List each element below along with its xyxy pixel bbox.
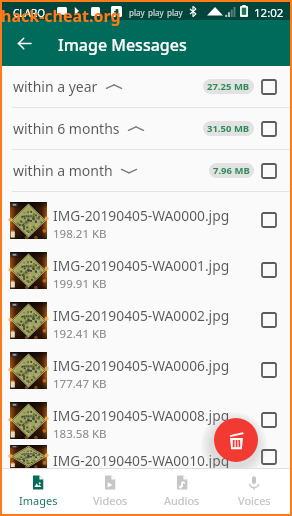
- button[interactable]: Select: [258, 118, 280, 140]
- staticText: 183.58 KB: [53, 426, 107, 442]
- staticText: Image Messages: [58, 34, 187, 56]
- staticText: IMG-20190405-WA0002.jpg: [53, 306, 230, 325]
- staticText: IMG-20190405-WA0006.jpg: [53, 356, 230, 375]
- staticText: Images: [19, 493, 58, 508]
- button[interactable]: Select: [258, 76, 280, 98]
- staticText: 31.50 MB: [207, 122, 250, 135]
- button[interactable]: IMG-20190405-WA0000.jpg: [2, 195, 290, 245]
- button[interactable]: Select: [258, 359, 280, 381]
- staticText: Audios: [164, 493, 200, 508]
- staticText: hack-cheat.org: [1, 5, 121, 27]
- staticText: Videos: [93, 493, 128, 508]
- button[interactable]: IMG-20190405-WA0010.jpg: [2, 445, 290, 468]
- button[interactable]: Select: [258, 309, 280, 331]
- button[interactable]: within a year: [2, 66, 290, 107]
- staticText: IMG-20190405-WA0010.jpg: [53, 451, 230, 470]
- staticText: play: [167, 7, 183, 18]
- button[interactable]: within 6 months: [2, 108, 290, 149]
- button[interactable]: within a month: [2, 150, 290, 191]
- staticText: 198.21 KB: [53, 226, 107, 242]
- staticText: IMG-20190405-WA0001.jpg: [53, 256, 230, 275]
- button[interactable]: Videos: [74, 469, 146, 514]
- button[interactable]: Select: [258, 409, 280, 431]
- staticText: 177.47 KB: [53, 376, 107, 392]
- staticText: within a year: [13, 77, 98, 96]
- staticText: 27.25 MB: [207, 80, 250, 93]
- button[interactable]: IMG-20190405-WA0008.jpg: [2, 395, 290, 445]
- button[interactable]: Delete: [214, 418, 258, 462]
- staticText: play: [148, 7, 164, 18]
- button[interactable]: Select: [258, 446, 280, 468]
- staticText: Voices: [238, 493, 271, 508]
- button[interactable]: IMG-20190405-WA0002.jpg: [2, 295, 290, 345]
- button[interactable]: Audios: [146, 469, 218, 514]
- staticText: 7.96 MB: [213, 164, 250, 177]
- button[interactable]: Back: [10, 20, 38, 66]
- button[interactable]: Images: [2, 469, 74, 514]
- button[interactable]: Voices: [218, 469, 290, 514]
- staticText: CLARO: [13, 6, 45, 20]
- staticText: play: [129, 7, 145, 18]
- staticText: 12:02: [254, 5, 284, 21]
- button[interactable]: Select: [258, 160, 280, 182]
- staticText: 192.41 KB: [53, 326, 107, 342]
- button[interactable]: Select: [258, 259, 280, 281]
- staticText: 199.91 KB: [53, 276, 107, 292]
- staticText: IMG-20190405-WA0008.jpg: [53, 406, 230, 425]
- staticText: within a month: [13, 161, 113, 180]
- staticText: within 6 months: [13, 119, 120, 138]
- button[interactable]: IMG-20190405-WA0001.jpg: [2, 245, 290, 295]
- staticText: IMG-20190405-WA0000.jpg: [53, 206, 230, 225]
- button[interactable]: Select: [258, 209, 280, 231]
- button[interactable]: IMG-20190405-WA0006.jpg: [2, 345, 290, 395]
